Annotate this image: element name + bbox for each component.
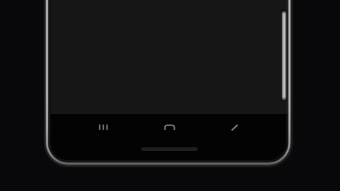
button[interactable]: Recent apps (60, 114, 146, 160)
button[interactable]: App content (51, 0, 288, 114)
button[interactable]: Power button (280, 11, 288, 101)
button[interactable]: Home (146, 114, 193, 160)
button[interactable]: Back (193, 114, 279, 160)
